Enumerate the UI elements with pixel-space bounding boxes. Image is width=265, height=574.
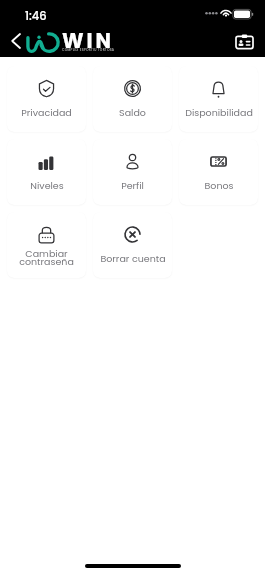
staticText: Borrar cuenta <box>100 252 166 265</box>
staticText: Disponibilidad <box>185 106 253 119</box>
button[interactable]: Borrar cuenta <box>93 212 172 278</box>
button[interactable]: Disponibilidad <box>179 66 258 132</box>
button[interactable]: Privacidad <box>7 66 86 132</box>
staticText: WIN <box>62 26 115 55</box>
staticText: Niveles <box>30 179 64 192</box>
button[interactable]: Niveles <box>7 139 86 205</box>
staticText: COMPLEX ESPORTIU TORTOSA <box>62 48 115 52</box>
button[interactable]: Back <box>3 29 25 51</box>
staticText: Saldo <box>119 106 146 119</box>
button[interactable]: Carnet <box>233 30 257 54</box>
staticText: Bonos <box>204 179 234 192</box>
button[interactable]: Saldo <box>93 66 172 132</box>
staticText: Privacidad <box>21 106 72 119</box>
staticText: Cambiar contraseña <box>19 247 74 269</box>
button[interactable]: Cambiar contraseña <box>7 212 86 278</box>
staticText: Perfil <box>121 179 144 192</box>
button[interactable]: Bonos <box>179 139 258 205</box>
button[interactable]: Perfil <box>93 139 172 205</box>
staticText: 1:46 <box>25 8 47 24</box>
